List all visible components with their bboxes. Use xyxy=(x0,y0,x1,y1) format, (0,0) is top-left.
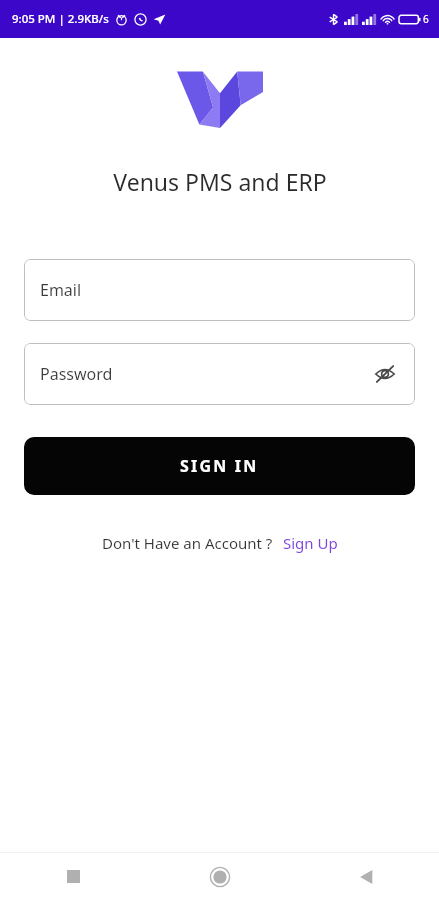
staticText: Venus PMS and ERP xyxy=(113,166,327,197)
button[interactable]: Show password xyxy=(369,358,401,390)
staticText: Email xyxy=(40,279,82,301)
button[interactable]: Sign Up xyxy=(283,533,338,553)
staticText: Password xyxy=(40,363,113,385)
button[interactable]: SIGN IN xyxy=(24,437,415,495)
staticText: 9:05 PM | 2.9KB/s xyxy=(12,11,109,27)
button[interactable]: Password xyxy=(24,343,415,405)
button[interactable]: Recents xyxy=(0,853,147,900)
staticText: Sign Up xyxy=(283,533,338,553)
button[interactable]: Back xyxy=(293,853,439,900)
staticText: Don't Have an Account ? xyxy=(102,533,273,553)
staticText: 6 xyxy=(423,12,429,26)
button[interactable]: Home xyxy=(147,853,293,900)
staticText: SIGN IN xyxy=(180,455,259,477)
button[interactable]: Email xyxy=(24,259,415,321)
